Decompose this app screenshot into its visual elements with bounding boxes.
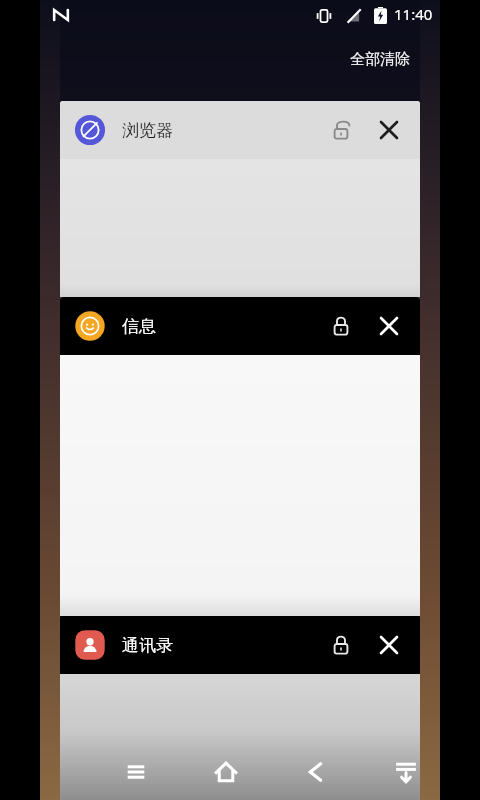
button[interactable]: Lock task	[318, 303, 364, 349]
button[interactable]: Lock task	[318, 622, 364, 668]
button[interactable]: 全部清除	[340, 44, 420, 75]
button[interactable]: Close task	[364, 620, 414, 670]
button[interactable]: 浏览器	[60, 101, 420, 297]
staticText: 全部清除	[350, 50, 410, 69]
button[interactable]: 信息	[60, 297, 420, 616]
staticText: 11:40	[394, 4, 433, 24]
button[interactable]: Home	[202, 748, 250, 796]
button[interactable]: Unlock task	[318, 107, 364, 153]
button[interactable]: Close task	[364, 105, 414, 155]
button[interactable]: Close task	[364, 301, 414, 351]
staticText: 信息	[122, 316, 156, 337]
button[interactable]: Collapse	[382, 748, 430, 796]
staticText: 浏览器	[122, 120, 173, 141]
button[interactable]: 通讯录	[60, 616, 420, 800]
button[interactable]: Recent apps	[112, 748, 160, 796]
staticText: 通讯录	[122, 635, 173, 656]
button[interactable]: Back	[292, 748, 340, 796]
